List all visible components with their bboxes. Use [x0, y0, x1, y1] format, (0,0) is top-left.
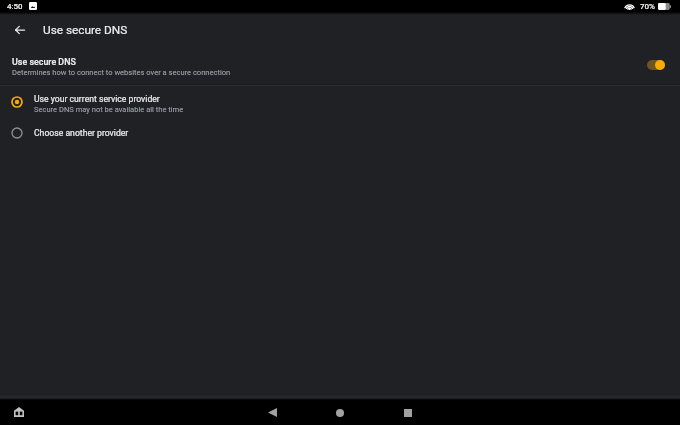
button[interactable]: Recent apps [393, 400, 423, 425]
button[interactable]: Use your current service provider [0, 86, 680, 117]
staticText: Secure DNS may not be available all the … [34, 105, 184, 114]
button[interactable]: Choose another provider [0, 117, 680, 149]
staticText: Use secure DNS [12, 57, 76, 67]
staticText: Use secure DNS [43, 23, 128, 37]
button[interactable]: Switch keyboard [12, 405, 26, 419]
button[interactable]: Back [257, 400, 287, 425]
button[interactable]: Back [6, 16, 34, 44]
staticText: 70% [640, 2, 655, 11]
button[interactable]: Home [325, 400, 355, 425]
staticText: 4:50 [7, 2, 23, 11]
staticText: Determines how to connect to websites ov… [12, 68, 231, 77]
staticText: Use your current service provider [34, 94, 160, 104]
staticText: Choose another provider [34, 128, 129, 138]
button[interactable]: Use secure DNS [0, 45, 680, 84]
